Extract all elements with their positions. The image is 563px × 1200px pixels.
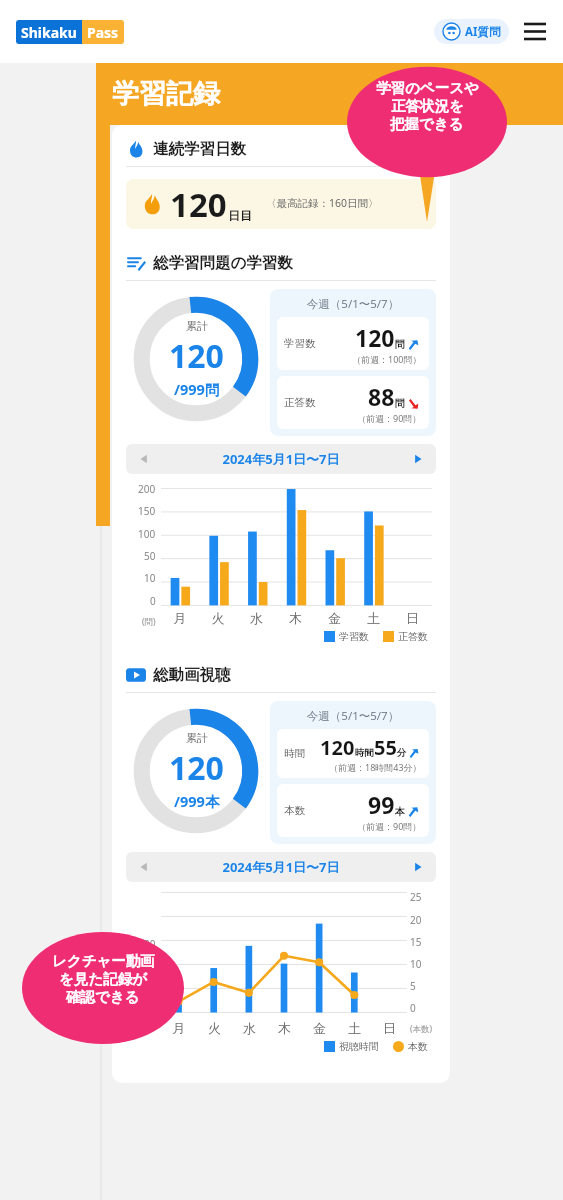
button[interactable]: 学習数	[284, 322, 422, 365]
staticText: (本数)	[410, 1023, 433, 1035]
staticText: 日	[372, 1020, 407, 1036]
staticText: 120	[320, 734, 355, 761]
staticText: 今週（5/1〜5/7）	[277, 296, 429, 312]
staticText: 日目	[228, 208, 252, 223]
staticText: 2024年5月1日〜7日	[152, 858, 410, 876]
staticText: 木	[276, 610, 315, 626]
staticText: (問)	[142, 616, 156, 628]
staticText: 累計	[186, 731, 208, 745]
staticText: 時間	[355, 747, 374, 759]
staticText: 学習数	[339, 630, 369, 643]
staticText: 2024年5月1日〜7日	[152, 450, 410, 468]
staticText: 50	[144, 549, 156, 563]
staticText: 総学習問題の学習数	[153, 253, 293, 273]
staticText: 総動画視聴	[153, 665, 231, 685]
staticText: 火	[199, 610, 237, 626]
staticText: 正答数	[284, 396, 316, 409]
button[interactable]: Menu	[523, 20, 547, 44]
staticText: を見た記録が	[59, 970, 148, 988]
staticText: 今週（5/1〜5/7）	[277, 708, 429, 724]
staticText: 本	[395, 805, 405, 818]
staticText: 分	[397, 747, 407, 759]
staticText: 15	[410, 935, 422, 949]
staticText: 100	[138, 527, 156, 541]
button[interactable]: 正答数	[284, 381, 422, 424]
staticText: 水	[237, 610, 276, 626]
staticText: 学習のペースや	[376, 79, 479, 97]
staticText: 連続学習日数	[153, 139, 246, 159]
staticText: 問	[395, 338, 405, 351]
staticText: Pass	[87, 23, 119, 42]
staticText: 本数	[408, 1040, 428, 1053]
staticText: 〈最高記録：160日間〉	[266, 196, 379, 210]
staticText: 学習数	[284, 337, 316, 350]
staticText: 正答状況を	[391, 97, 464, 115]
staticText: 問	[395, 397, 405, 410]
staticText: 10	[144, 571, 156, 585]
staticText: 正答数	[398, 630, 428, 643]
staticText: 時間	[284, 747, 305, 760]
button[interactable]: Next week	[410, 451, 426, 467]
staticText: レクチャー動画	[52, 952, 155, 970]
staticText: 99	[368, 789, 395, 820]
staticText: 確認できる	[66, 988, 140, 1006]
staticText: 視聴時間	[339, 1040, 379, 1053]
staticText: 本数	[284, 804, 305, 817]
staticText: Shikaku	[21, 23, 77, 42]
staticText: /999問	[174, 379, 220, 399]
staticText: 10	[410, 957, 422, 971]
staticText: 日	[393, 610, 432, 626]
button[interactable]: Shikaku	[16, 20, 124, 44]
staticText: 20	[144, 937, 156, 951]
button[interactable]: 時間	[284, 734, 422, 773]
staticText: 150	[138, 504, 156, 518]
staticText: AI質問	[465, 24, 501, 40]
staticText: （前週：100問）	[352, 353, 422, 365]
staticText: 120	[170, 182, 227, 227]
staticText: 累計	[186, 319, 208, 333]
staticText: 120	[355, 322, 395, 353]
staticText: 55	[374, 734, 397, 761]
staticText: 0	[150, 594, 156, 608]
staticText: 水	[232, 1020, 267, 1036]
staticText: 10	[144, 969, 156, 983]
staticText: 金	[315, 610, 354, 626]
staticText: 25	[410, 890, 422, 904]
staticText: （前週：18時間43分）	[329, 761, 422, 773]
staticText: （前週：90問）	[357, 820, 422, 832]
staticText: 200	[138, 482, 156, 496]
button[interactable]: Previous week	[136, 859, 152, 875]
staticText: 学習記録	[112, 77, 220, 111]
staticText: 把握できる	[390, 115, 464, 133]
staticText: 88	[368, 381, 395, 412]
staticText: 火	[197, 1020, 232, 1036]
staticText: /999本	[174, 791, 220, 811]
staticText: 土	[354, 610, 393, 626]
button[interactable]: Previous week	[136, 451, 152, 467]
staticText: 5	[410, 979, 416, 993]
button[interactable]: AI質問	[442, 22, 501, 41]
staticText: 金	[302, 1020, 337, 1036]
staticText: 120	[169, 334, 224, 378]
staticText: 月	[161, 610, 199, 626]
staticText: 土	[337, 1020, 372, 1036]
staticText: 木	[267, 1020, 302, 1036]
staticText: 20	[410, 913, 422, 927]
staticText: （前週：90問）	[357, 412, 422, 424]
staticText: 120	[169, 746, 224, 790]
staticText: 0	[410, 1001, 416, 1015]
staticText: 月	[161, 1020, 197, 1036]
button[interactable]: 本数	[284, 789, 422, 832]
button[interactable]: Next week	[410, 859, 426, 875]
